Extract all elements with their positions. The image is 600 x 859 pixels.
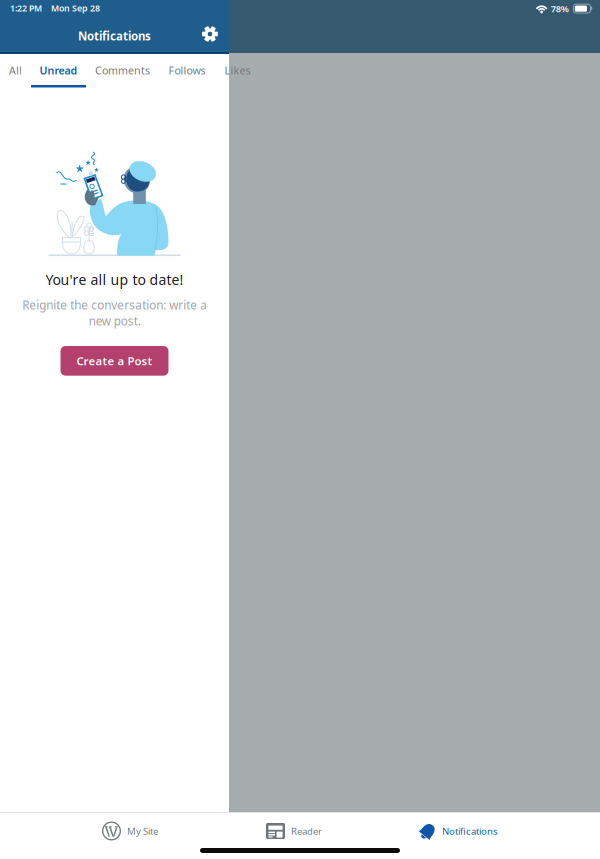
staticText: Create a Post (76, 353, 152, 369)
button[interactable]: Unread (31, 55, 86, 87)
staticText: 1:22 PM (10, 2, 42, 14)
button[interactable]: Notifications (376, 813, 540, 849)
staticText: Notifications (442, 824, 498, 838)
button[interactable]: All (0, 55, 31, 87)
button[interactable]: Create a Post (60, 346, 168, 376)
staticText: Reignite the conversation: write a new p… (22, 297, 207, 329)
staticText: Mon Sep 28 (51, 2, 100, 14)
staticText: Reader (291, 824, 322, 838)
staticText: Unread (39, 63, 77, 77)
button[interactable]: Likes (215, 55, 260, 87)
button[interactable]: Comments (86, 55, 159, 87)
button[interactable]: Reader (212, 813, 376, 849)
button[interactable]: My Site (48, 813, 212, 849)
button[interactable]: Settings (196, 20, 224, 48)
staticText: You're all up to date! (45, 270, 183, 289)
staticText: Notifications (78, 28, 151, 44)
staticText: Follows (168, 63, 205, 77)
staticText: My Site (127, 824, 158, 838)
staticText: Comments (95, 63, 150, 77)
staticText: 78% (551, 2, 569, 15)
staticText: All (9, 63, 22, 77)
staticText: Likes (224, 63, 250, 77)
button[interactable]: Follows (159, 55, 215, 87)
